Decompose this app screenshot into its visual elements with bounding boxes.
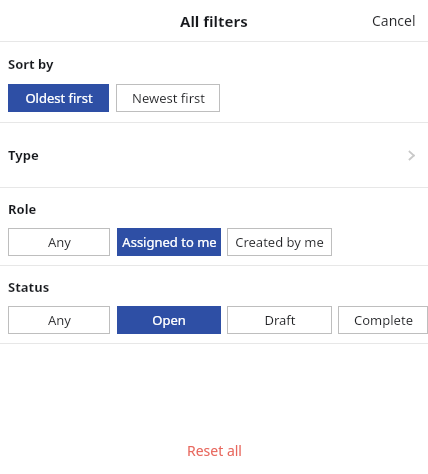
button[interactable]: Open [117, 306, 221, 334]
button[interactable]: Newest first [116, 84, 220, 112]
button[interactable]: Type [0, 123, 428, 187]
staticText: Role [8, 200, 37, 218]
button[interactable]: Complete [338, 306, 428, 334]
staticText: Reset all [187, 441, 242, 460]
staticText: Assigned to me [122, 233, 217, 251]
button[interactable]: Any [8, 228, 110, 256]
staticText: Created by me [235, 233, 324, 251]
button[interactable]: Any [8, 306, 110, 334]
button[interactable]: Reset all [171, 435, 258, 466]
staticText: Newest first [132, 89, 205, 107]
staticText: Sort by [8, 55, 54, 73]
button[interactable]: Oldest first [8, 84, 109, 112]
staticText: Type [8, 146, 39, 164]
staticText: Complete [354, 311, 413, 329]
staticText: Status [8, 278, 50, 296]
staticText: Oldest first [25, 89, 93, 107]
staticText: Draft [264, 311, 296, 329]
button[interactable]: Assigned to me [117, 228, 221, 256]
staticText: Any [48, 311, 71, 329]
button[interactable]: Cancel [366, 3, 422, 38]
button[interactable]: Created by me [227, 228, 332, 256]
other: Open Type filter [402, 146, 420, 164]
staticText: Open [152, 311, 186, 329]
staticText: All filters [180, 11, 248, 31]
staticText: Any [48, 233, 71, 251]
staticText: Cancel [372, 11, 416, 30]
button[interactable]: Draft [227, 306, 332, 334]
